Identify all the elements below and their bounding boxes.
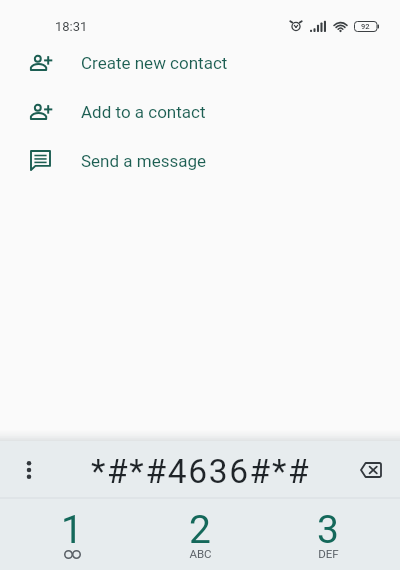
staticText: Send a message (81, 151, 207, 171)
staticText: *#*#4636#*# (91, 452, 311, 491)
staticText: DEF (318, 547, 339, 560)
button[interactable]: More options (8, 449, 49, 490)
button[interactable]: 1 (8, 506, 136, 570)
button[interactable]: Send a message (0, 136, 400, 185)
staticText: 2 (189, 507, 211, 553)
button[interactable]: 2 (136, 506, 264, 570)
staticText: 1 (61, 507, 83, 553)
button[interactable]: Create new contact (0, 38, 400, 87)
staticText: ABC (189, 547, 212, 560)
staticText: 18:31 (55, 19, 88, 34)
button[interactable]: Backspace (349, 447, 393, 491)
staticText: Add to a contact (81, 102, 206, 122)
button[interactable]: 3 (264, 506, 392, 570)
staticText: Create new contact (81, 53, 228, 73)
button[interactable]: Add to a contact (0, 87, 400, 136)
staticText: 3 (317, 507, 339, 553)
staticText: 92 (361, 22, 370, 31)
